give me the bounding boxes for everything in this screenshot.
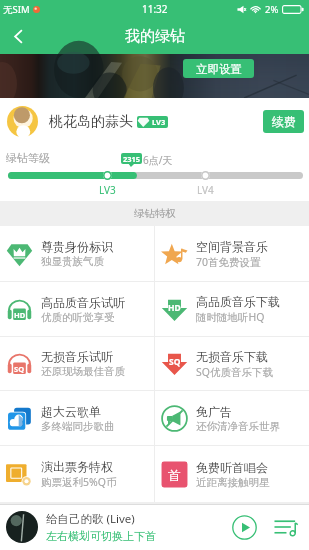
- staticText: 多终端同步歌曲: [41, 420, 115, 433]
- button[interactable]: 尊贵身份标识: [0, 226, 154, 281]
- button[interactable]: HD: [0, 282, 154, 336]
- staticText: 还原现场最佳音质: [41, 365, 125, 378]
- button[interactable]: SQ: [155, 337, 309, 390]
- staticText: SQ: [14, 364, 25, 374]
- staticText: 6点/天: [143, 153, 173, 167]
- staticText: 独显贵族气质: [41, 255, 104, 268]
- button[interactable]: 空间背景音乐: [155, 226, 309, 281]
- button[interactable]: SQ: [0, 337, 154, 390]
- staticText: 高品质音乐下载: [196, 294, 280, 309]
- staticText: 2%: [265, 3, 279, 16]
- staticText: SQ优质音乐下载: [196, 365, 273, 379]
- staticText: 无损音乐下载: [196, 349, 268, 364]
- staticText: 续费: [272, 114, 296, 129]
- button[interactable]: Play: [229, 512, 259, 542]
- staticText: 随时随地听HQ: [196, 310, 265, 324]
- button[interactable]: Back: [0, 18, 36, 54]
- staticText: 绿钻特权: [134, 207, 176, 220]
- staticText: 高品质音乐试听: [41, 295, 125, 310]
- staticText: 绿钻等级: [6, 151, 50, 165]
- staticText: 免费听首唱会: [196, 460, 268, 475]
- staticText: 超大云歌单: [41, 404, 101, 419]
- staticText: LV3: [99, 183, 116, 197]
- staticText: 左右横划可切换上下首: [46, 529, 156, 543]
- staticText: 桃花岛的蒜头: [49, 113, 133, 131]
- staticText: LV4: [197, 183, 214, 197]
- staticText: 首: [168, 467, 181, 483]
- staticText: 70首免费设置: [196, 255, 261, 269]
- button[interactable]: 演出票务特权: [0, 446, 154, 502]
- staticText: 2315: [123, 154, 141, 164]
- staticText: LV3: [152, 117, 166, 127]
- button[interactable]: 免广告: [155, 391, 309, 445]
- staticText: 还你清净音乐世界: [196, 420, 280, 433]
- staticText: 11:32: [142, 2, 168, 16]
- staticText: 空间背景音乐: [196, 239, 268, 254]
- staticText: 我的绿钻: [125, 27, 185, 46]
- button[interactable]: 续费: [263, 110, 304, 133]
- staticText: SQ: [169, 356, 181, 368]
- button[interactable]: Playlist: [271, 512, 301, 542]
- button[interactable]: 立即设置: [183, 59, 254, 78]
- staticText: HD: [168, 302, 181, 314]
- button[interactable]: HD: [155, 282, 309, 336]
- staticText: 无SIM: [3, 3, 30, 16]
- staticText: 无损音乐试听: [41, 349, 113, 364]
- staticText: 优质的听觉享受: [41, 311, 115, 324]
- staticText: 近距离接触明星: [196, 476, 270, 489]
- staticText: 演出票务特权: [41, 459, 113, 474]
- button[interactable]: 超大云歌单: [0, 391, 154, 445]
- staticText: HD: [14, 310, 26, 320]
- staticText: 给自己的歌 (Live): [46, 511, 135, 527]
- button[interactable]: 首: [155, 446, 309, 502]
- staticText: 购票返利5%Q币: [41, 475, 117, 489]
- staticText: 免广告: [196, 404, 232, 419]
- staticText: 尊贵身份标识: [41, 239, 113, 254]
- staticText: 立即设置: [196, 62, 242, 76]
